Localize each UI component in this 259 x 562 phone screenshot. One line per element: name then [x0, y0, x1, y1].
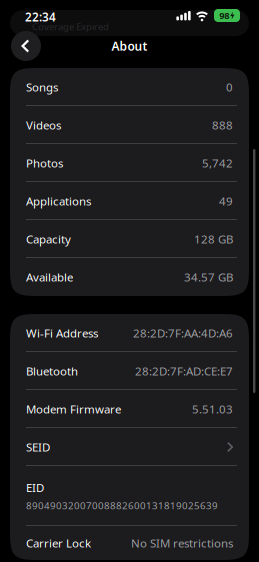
staticText: Applications	[26, 193, 91, 209]
staticText: EID	[26, 480, 44, 495]
staticText: 128 GB	[194, 231, 233, 247]
staticText: Songs	[26, 79, 58, 95]
staticText: 28:2D:7F:AD:CE:E7	[135, 363, 233, 379]
staticText: 5.51.03	[192, 401, 233, 417]
staticText: 89049032007008882600131819025639	[26, 499, 218, 512]
staticText: Capacity	[26, 231, 71, 247]
staticText: Modem Firmware	[26, 401, 121, 417]
staticText: About	[111, 38, 147, 54]
staticText: 22:34	[25, 9, 56, 25]
staticText: 5,742	[202, 155, 233, 171]
button[interactable]: Videos	[10, 106, 249, 144]
button[interactable]: Wi-Fi Address	[10, 314, 249, 352]
staticText: 49	[219, 193, 233, 209]
staticText: Bluetooth	[26, 363, 78, 379]
button[interactable]: SEID	[10, 428, 249, 466]
staticText: Videos	[26, 117, 61, 133]
staticText: Coverage Expired	[32, 20, 109, 33]
staticText: SEID	[26, 439, 50, 455]
button[interactable]: Back	[11, 31, 41, 61]
button[interactable]: Modem Firmware	[10, 390, 249, 428]
button[interactable]: Bluetooth	[10, 352, 249, 390]
staticText: 34.57 GB	[184, 269, 233, 285]
button[interactable]: Photos	[10, 144, 249, 182]
staticText: No SIM restrictions	[131, 535, 233, 551]
staticText: Available	[26, 269, 73, 285]
staticText: Photos	[26, 155, 63, 171]
staticText: 888	[212, 117, 233, 133]
button[interactable]: Songs	[10, 68, 249, 106]
button[interactable]: Capacity	[10, 220, 249, 258]
staticText: 98	[219, 9, 229, 22]
staticText: 28:2D:7F:AA:4D:A6	[133, 325, 233, 341]
staticText: Wi-Fi Address	[26, 325, 98, 341]
staticText: Carrier Lock	[26, 535, 91, 551]
button[interactable]: EID	[10, 466, 249, 526]
button[interactable]: Carrier Lock	[10, 526, 249, 560]
staticText: 0	[226, 79, 233, 95]
button[interactable]: Available	[10, 258, 249, 296]
button[interactable]: Applications	[10, 182, 249, 220]
